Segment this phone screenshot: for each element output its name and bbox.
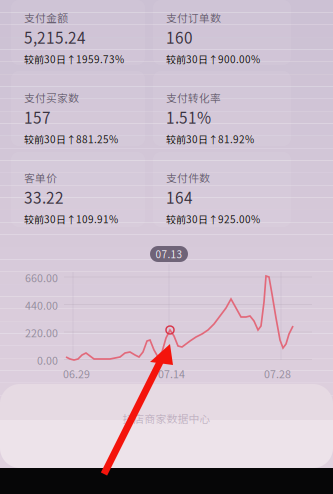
staticText: 164: [166, 186, 193, 208]
staticText: 抖店商家数据中心: [122, 411, 210, 426]
staticText: 较前30日↑925.00%: [166, 212, 260, 226]
staticText: 0.00: [37, 352, 58, 368]
staticText: 660.00: [25, 270, 58, 285]
staticText: 较前30日↑1959.73%: [24, 52, 124, 66]
staticText: 160: [166, 26, 193, 48]
staticText: 07.13: [155, 247, 182, 261]
staticText: 07.28: [264, 366, 291, 381]
staticText: 157: [24, 106, 51, 128]
staticText: 支付件数: [166, 170, 210, 185]
staticText: 33.22: [24, 186, 64, 208]
staticText: 1.51%: [166, 106, 211, 128]
staticText: 支付订单数: [166, 10, 221, 25]
staticText: 5,215.24: [24, 26, 86, 48]
button[interactable]: 支付转化率: [153, 72, 288, 147]
staticText: 较前30日↑109.91%: [24, 212, 118, 226]
staticText: 支付金额: [24, 10, 68, 25]
button[interactable]: 支付订单数: [153, 0, 288, 75]
staticText: 440.00: [25, 297, 58, 313]
button[interactable]: 客单价: [11, 152, 146, 227]
button[interactable]: 支付金额: [11, 0, 146, 75]
button[interactable]: 支付件数: [153, 152, 288, 227]
staticText: 支付买家数: [24, 90, 79, 105]
staticText: 06.29: [63, 366, 90, 381]
staticText: 客单价: [24, 170, 57, 185]
button[interactable]: 07.13: [150, 246, 188, 262]
staticText: 较前30日↑881.25%: [24, 132, 118, 146]
staticText: 较前30日↑900.00%: [166, 52, 260, 66]
button[interactable]: 支付买家数: [11, 72, 146, 147]
staticText: 07.14: [158, 366, 185, 381]
staticText: 支付转化率: [166, 90, 221, 105]
staticText: 较前30日↑81.92%: [166, 132, 254, 146]
staticText: 220.00: [25, 325, 58, 340]
